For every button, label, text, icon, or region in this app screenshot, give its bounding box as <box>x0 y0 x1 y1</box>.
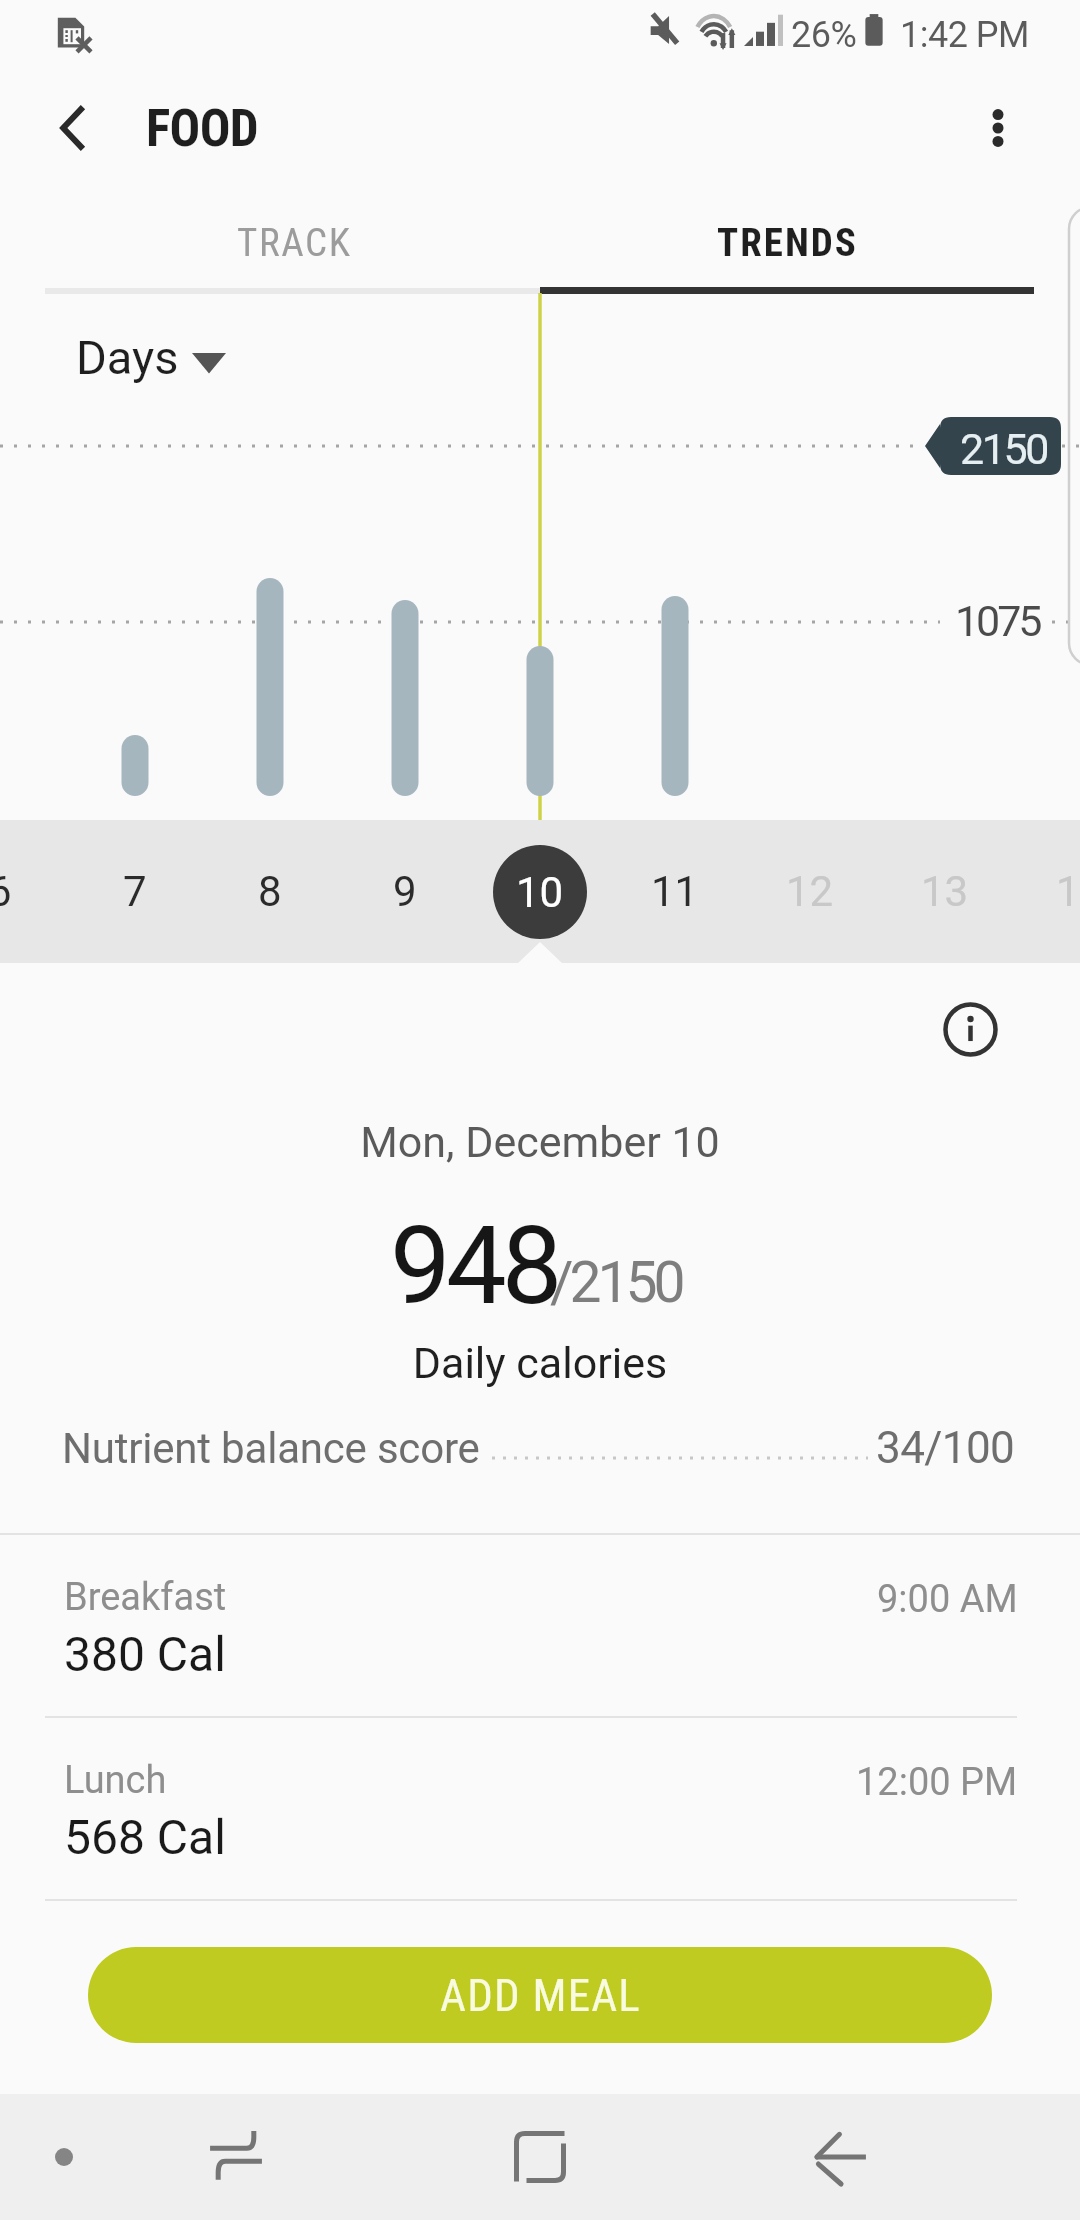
button[interactable]: Back <box>750 2094 930 2220</box>
staticText: 8 <box>258 867 282 916</box>
staticText: 9:00 AM <box>877 1577 1018 1622</box>
button[interactable]: TRACK <box>47 193 542 293</box>
staticText: 6 <box>0 867 12 916</box>
button[interactable]: Lunch <box>0 1718 1080 1901</box>
staticText: 1:42 PM <box>900 14 1029 56</box>
staticText: 7 <box>123 867 147 916</box>
button[interactable]: 6 <box>0 820 67 963</box>
staticText: TRACK <box>237 220 352 266</box>
staticText: 26% <box>791 14 857 56</box>
staticText: ADD MEAL <box>440 1969 641 2022</box>
staticText: 9 <box>393 867 417 916</box>
staticText: Nutrient balance score <box>62 1424 480 1473</box>
staticText: Daily calories <box>0 1338 1080 1388</box>
button[interactable]: More options <box>956 86 1040 170</box>
button[interactable]: Days <box>76 330 226 385</box>
staticText: 13 <box>921 867 969 916</box>
staticText: 11 <box>651 867 699 916</box>
button[interactable]: Breakfast <box>0 1535 1080 1718</box>
button[interactable]: 12 <box>743 820 877 963</box>
button[interactable]: 8 <box>203 820 337 963</box>
staticText: 14 <box>1056 867 1080 916</box>
staticText: FOOD <box>146 99 258 159</box>
staticText: /2150 <box>550 1249 682 1316</box>
staticText: TRENDS <box>717 220 858 266</box>
staticText: 380 Cal <box>64 1626 226 1682</box>
button[interactable]: ADD MEAL <box>88 1947 992 2043</box>
button[interactable]: Navigate up <box>34 86 118 170</box>
staticText: Breakfast <box>64 1575 227 1620</box>
button[interactable]: 11 <box>608 820 742 963</box>
button[interactable]: Show keyboard <box>16 2094 112 2220</box>
staticText: 10 <box>516 868 564 917</box>
button[interactable]: 14 <box>1013 820 1080 963</box>
button[interactable]: TRENDS <box>540 193 1035 293</box>
staticText: Mon, December 10 <box>0 1117 1080 1167</box>
staticText: Lunch <box>64 1758 167 1803</box>
button[interactable]: 9 <box>338 820 472 963</box>
button[interactable]: Information <box>928 987 1012 1071</box>
button[interactable]: 7 <box>68 820 202 963</box>
staticText: 568 Cal <box>64 1809 226 1865</box>
staticText: 948 <box>390 1203 558 1330</box>
staticText: 2150 <box>960 424 1048 474</box>
staticText: 34/100 <box>876 1422 1015 1474</box>
staticText: 1075 <box>955 596 1040 646</box>
button[interactable]: 13 <box>878 820 1012 963</box>
button[interactable]: 10 <box>473 820 607 963</box>
staticText: Days <box>76 330 179 385</box>
staticText: 12:00 PM <box>856 1760 1018 1805</box>
staticText: 12 <box>786 867 834 916</box>
button[interactable]: Home <box>450 2094 630 2220</box>
button[interactable]: Recent apps <box>146 2094 326 2220</box>
